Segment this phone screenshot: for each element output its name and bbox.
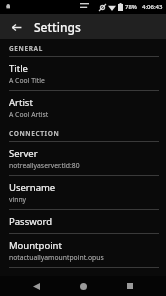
- staticText: 4:06:43: [142, 3, 163, 11]
- staticText: Artist: [9, 96, 33, 109]
- staticText: vinny: [9, 195, 27, 204]
- button[interactable]: Artist: [0, 91, 166, 124]
- button[interactable]: Title: [0, 57, 166, 90]
- staticText: A Cool Artist: [9, 110, 49, 119]
- staticText: A Cool Title: [9, 76, 45, 85]
- staticText: Mountpoint: [9, 239, 62, 252]
- staticText: notreallyaserver.tld:80: [9, 161, 80, 170]
- button[interactable]: Mountpoint: [0, 234, 166, 267]
- staticText: Server: [9, 147, 38, 160]
- button[interactable]: Recent apps: [119, 276, 141, 296]
- button[interactable]: Home: [72, 276, 94, 296]
- staticText: Username: [9, 181, 56, 194]
- button[interactable]: Server: [0, 142, 166, 175]
- button[interactable]: Back: [5, 16, 27, 38]
- button[interactable]: Username: [0, 176, 166, 209]
- button[interactable]: Back: [25, 276, 47, 296]
- staticText: GENERAL: [9, 44, 43, 53]
- staticText: Title: [9, 62, 28, 75]
- staticText: Password: [9, 215, 52, 228]
- button[interactable]: Password: [0, 210, 166, 233]
- staticText: CONNECTION: [9, 129, 60, 138]
- staticText: notactuallyamountpoint.opus: [9, 253, 104, 262]
- staticText: Settings: [34, 19, 81, 35]
- staticText: 78%: [125, 3, 137, 11]
